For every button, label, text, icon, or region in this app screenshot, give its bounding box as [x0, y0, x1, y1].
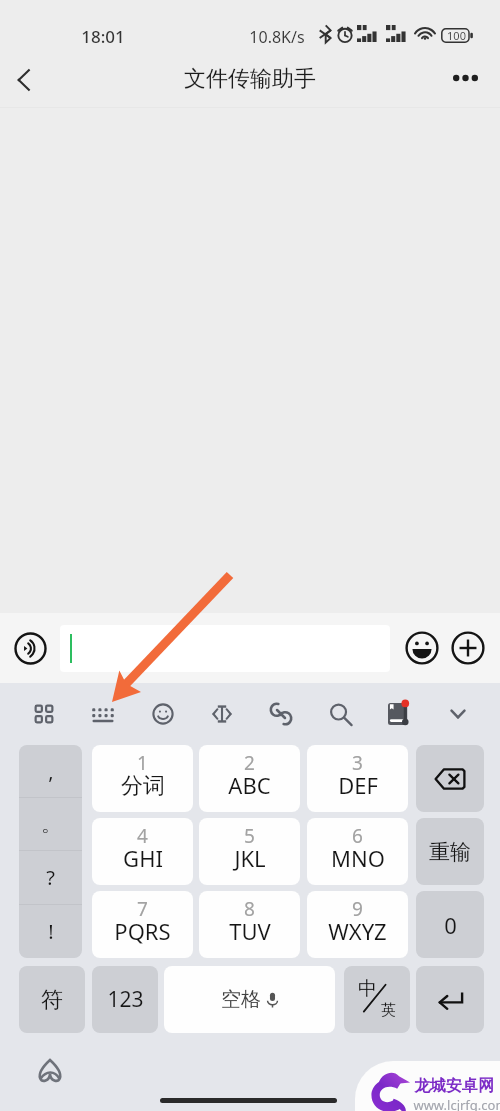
staticText: DEF: [338, 770, 378, 800]
staticText: GHI: [123, 843, 163, 873]
staticText: 英: [381, 1001, 396, 1020]
staticText: www.lcjrfg.com: [413, 1096, 500, 1111]
staticText: 100: [447, 28, 466, 43]
button[interactable]: Backspace: [416, 745, 484, 812]
button[interactable]: Back: [2, 58, 46, 102]
button[interactable]: Enter: [416, 966, 484, 1033]
staticText: 中: [358, 977, 377, 1001]
button[interactable]: Emoji: [402, 628, 442, 668]
staticText: MNO: [331, 843, 385, 873]
staticText: 9: [352, 896, 363, 922]
button[interactable]: 空格: [164, 966, 335, 1033]
button[interactable]: 2: [199, 745, 300, 812]
button[interactable]: 5: [199, 818, 300, 885]
staticText: 6: [352, 823, 363, 849]
button[interactable]: More options: [443, 56, 487, 100]
staticText: 文件传输助手: [184, 65, 316, 93]
staticText: 4: [137, 823, 148, 849]
button[interactable]: More: [448, 628, 488, 668]
button[interactable]: 7: [92, 891, 193, 958]
staticText: 。: [41, 812, 61, 837]
staticText: ?: [46, 864, 55, 891]
button[interactable]: 。: [19, 798, 82, 850]
button[interactable]: 4: [92, 818, 193, 885]
button[interactable]: Search: [316, 692, 364, 736]
button[interactable]: Cursor editing: [198, 692, 246, 736]
staticText: 符: [41, 986, 63, 1014]
staticText: 1: [137, 750, 148, 776]
button[interactable]: 9: [307, 891, 408, 958]
staticText: 2: [244, 750, 255, 776]
button[interactable]: Link: [257, 692, 305, 736]
button[interactable]: Voice input: [8, 626, 52, 670]
button[interactable]: Dictionary: [376, 692, 424, 736]
staticText: 空格: [221, 987, 261, 1012]
button[interactable]: [60, 625, 390, 672]
button[interactable]: ,: [19, 745, 82, 797]
button[interactable]: 0: [416, 891, 484, 958]
button[interactable]: !: [19, 905, 82, 958]
staticText: 7: [137, 896, 148, 922]
staticText: TUV: [229, 916, 271, 946]
button[interactable]: 重输: [416, 818, 484, 885]
staticText: ABC: [228, 770, 271, 800]
staticText: 重输: [429, 839, 471, 865]
button[interactable]: Emoji: [139, 692, 187, 736]
staticText: 分词: [121, 772, 165, 800]
button[interactable]: 符: [19, 966, 85, 1033]
staticText: JKL: [234, 843, 266, 873]
button[interactable]: Panel: [20, 692, 68, 736]
staticText: 5: [244, 823, 255, 849]
button[interactable]: Input method logo: [36, 1056, 64, 1084]
button[interactable]: Collapse keyboard: [434, 692, 482, 736]
staticText: !: [48, 918, 54, 945]
staticText: 龙城安卓网: [414, 1076, 494, 1096]
button[interactable]: 123: [92, 966, 158, 1033]
button[interactable]: 1: [92, 745, 193, 812]
staticText: WXYZ: [328, 916, 387, 946]
button[interactable]: Chinese English toggle: [344, 966, 410, 1033]
button[interactable]: ?: [19, 851, 82, 904]
staticText: 123: [107, 985, 144, 1014]
button[interactable]: Keyboard layout: [79, 692, 127, 736]
staticText: 3: [352, 750, 363, 776]
button[interactable]: 6: [307, 818, 408, 885]
staticText: 10.8K/s: [249, 26, 305, 48]
staticText: PQRS: [114, 916, 171, 946]
button[interactable]: 3: [307, 745, 408, 812]
button[interactable]: 8: [199, 891, 300, 958]
staticText: ,: [48, 758, 54, 785]
staticText: 18:01: [81, 25, 125, 48]
staticText: 0: [444, 910, 457, 940]
staticText: 8: [244, 896, 255, 922]
